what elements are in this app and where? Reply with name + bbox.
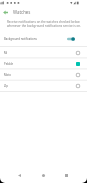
staticText: Receive notifications on the watches che… [7,20,85,28]
staticText: Mi [4,51,76,55]
button[interactable]: Back [13,169,26,182]
button[interactable]: Navigate up [0,7,11,17]
staticText: Background notifications [4,37,67,41]
staticText: Moto [4,73,76,77]
button[interactable]: Mi [0,47,87,58]
button[interactable]: Recent apps [60,169,73,182]
staticText: Watches [13,9,31,15]
staticText: Pebble [4,62,76,66]
button[interactable]: Background notifications [0,33,87,44]
button[interactable]: Home [37,169,50,182]
button[interactable]: Moto [0,69,87,80]
staticText: Zip [4,84,76,88]
button[interactable]: Zip [0,80,87,91]
button[interactable]: Pebble [0,58,87,69]
